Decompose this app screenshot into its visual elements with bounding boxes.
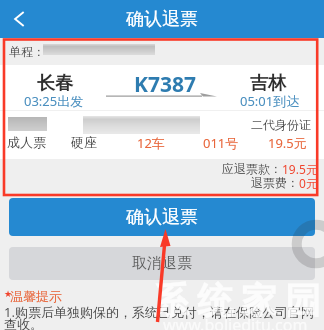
staticText: 温馨提示 (10, 288, 62, 304)
staticText: 011号 (203, 134, 239, 152)
staticText: 应退票款： (222, 161, 282, 176)
staticText: 二代身份证 (251, 117, 311, 132)
staticText: 1.购票后单独购保的，系统已兑付，请在保险公司官网查收。 (4, 303, 320, 330)
staticText: 12车 (137, 134, 165, 152)
button[interactable]: Back (0, 0, 38, 38)
staticText: ★ (4, 289, 13, 299)
staticText: 0元 (299, 175, 318, 191)
staticText: 05:01到达 (240, 92, 300, 110)
staticText: 19.5元 (282, 161, 318, 177)
staticText: 成人票 (7, 134, 46, 150)
staticText: 系统家园 (149, 278, 324, 323)
staticText: 退票费： (251, 175, 299, 190)
staticText: 19.5元 (268, 134, 307, 152)
staticText: 硬座 (71, 134, 97, 150)
staticText: 单程： (9, 44, 45, 59)
staticText: 确认退票 (126, 206, 198, 229)
staticText: 03:25出发 (24, 92, 84, 110)
staticText: 确认退票 (126, 8, 198, 31)
staticText: 吉林 (250, 72, 286, 95)
button[interactable]: 确认退票 (9, 198, 315, 236)
button[interactable]: 取消退票 (9, 247, 315, 280)
staticText: 长春 (37, 72, 73, 95)
staticText: www.bolieditu.com (163, 314, 308, 330)
staticText: 取消退票 (132, 254, 192, 273)
staticText: K7387 (134, 70, 196, 99)
